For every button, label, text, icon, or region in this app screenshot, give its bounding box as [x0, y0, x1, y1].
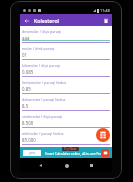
- button[interactable]: milimolar / pərəqi lindus: [20, 128, 112, 145]
- button[interactable]: Calculator: [96, 128, 110, 142]
- staticText: desimolar / ölçü pərəqi: [22, 29, 61, 34]
- button[interactable]: desimolar / ölçü pərəqi: [20, 26, 112, 43]
- staticText: 8,5: [22, 103, 29, 109]
- staticText: 0.85: [22, 86, 31, 92]
- staticText: sentimolar / ölçü pərəqi: [22, 114, 63, 119]
- button[interactable]: Recents: [87, 161, 96, 170]
- staticText: 11:48: [100, 8, 110, 13]
- staticText: kilomolar / ölçü pərəqi: [22, 63, 60, 68]
- staticText: Kolesterol: [34, 17, 59, 24]
- staticText: molar / dmk pərəqi: [22, 46, 55, 51]
- staticText: Smart Calculator online, all-in-one Free: [45, 152, 104, 156]
- staticText: milimolar / pərəqi lindus: [22, 131, 64, 136]
- staticText: 85.000: [22, 137, 36, 143]
- staticText: 8.500: [22, 120, 34, 126]
- button[interactable]: Home: [62, 161, 71, 170]
- staticText: 0.085: [22, 69, 34, 75]
- button[interactable]: kilomolar / ölçü pərəqi: [20, 60, 112, 77]
- button[interactable]: dekamolar / pərəqi lindus: [20, 94, 112, 111]
- button[interactable]: Delete: [101, 16, 110, 25]
- button[interactable]: Back: [22, 16, 31, 25]
- staticText: aaa: [22, 35, 30, 41]
- button[interactable]: sentimolar / ölçü pərəqi: [20, 111, 112, 128]
- button[interactable]: Back: [36, 161, 45, 170]
- button[interactable]: gms: [20, 147, 112, 158]
- staticText: fentomolar / pərəqi lindus: [22, 80, 67, 85]
- staticText: 01: [22, 52, 28, 58]
- staticText: dekamolar / pərəqi lindus: [22, 97, 66, 102]
- staticText: gms: [29, 151, 36, 155]
- staticText: Try Now: [64, 147, 77, 151]
- button[interactable]: fentomolar / pərəqi lindus: [20, 77, 112, 94]
- button[interactable]: molar / dmk pərəqi: [20, 43, 112, 60]
